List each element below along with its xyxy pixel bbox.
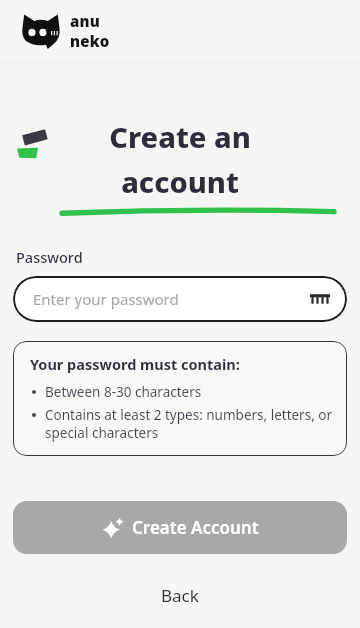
staticText: Create an: [109, 117, 251, 156]
button[interactable]: Create Account: [13, 501, 347, 554]
staticText: Password: [16, 247, 83, 267]
staticText: Between 8-30 characters: [45, 383, 202, 401]
button[interactable]: Show password: [307, 286, 333, 312]
button[interactable]: Back: [0, 578, 360, 612]
staticText: Back: [161, 584, 199, 607]
staticText: account: [121, 162, 239, 201]
staticText: Create Account: [132, 516, 259, 539]
staticText: Your password must contain:: [30, 354, 240, 374]
staticText: neko: [70, 31, 110, 51]
staticText: Enter your password: [33, 289, 179, 309]
staticText: anu: [70, 11, 101, 31]
button[interactable]: anu neko home: [20, 11, 110, 51]
staticText: Contains at least 2 types: numbers, lett…: [45, 406, 333, 442]
button[interactable]: Your password must contain:: [13, 341, 347, 456]
button[interactable]: Enter your password: [13, 276, 347, 322]
